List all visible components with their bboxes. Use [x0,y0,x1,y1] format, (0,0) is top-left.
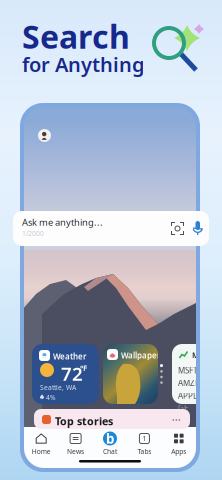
button[interactable]: Home [24,431,58,456]
button[interactable]: Ask me anything... [13,211,209,246]
button[interactable]: Wallpaper [103,344,158,404]
staticText: Top stories [55,414,113,428]
button[interactable]: M [172,344,222,404]
staticText: °F [80,363,87,374]
button[interactable]: Weather [32,344,99,404]
staticText: GE [178,403,188,413]
staticText: 72 [61,361,83,386]
staticText: Search [22,15,130,57]
staticText: News [67,447,84,456]
staticText: 1/2000 [22,229,44,238]
button[interactable]: b [93,431,127,456]
staticText: Wallpaper [121,350,160,361]
staticText: for Anything [22,51,145,78]
button[interactable]: News [58,431,93,456]
staticText: ··· [172,413,181,425]
staticText: Home [32,447,51,456]
staticText: Ask me anything... [22,216,103,228]
button[interactable]: Top stories [34,409,190,429]
staticText: 1 [142,434,146,443]
staticText: Weather [53,351,86,362]
staticText: APPL [178,390,197,401]
staticText: M [192,350,199,361]
staticText: Tabs [137,447,151,456]
button[interactable]: 1 [127,431,162,456]
staticText: MSFT [178,365,197,376]
staticText: Seattle, WA [40,383,76,392]
staticText: AMZN [178,378,201,388]
staticText: 4% [46,393,56,402]
button[interactable]: Apps [162,431,196,456]
staticText: b [106,430,114,447]
staticText: Chat [103,447,117,456]
staticText: Apps [171,447,186,456]
